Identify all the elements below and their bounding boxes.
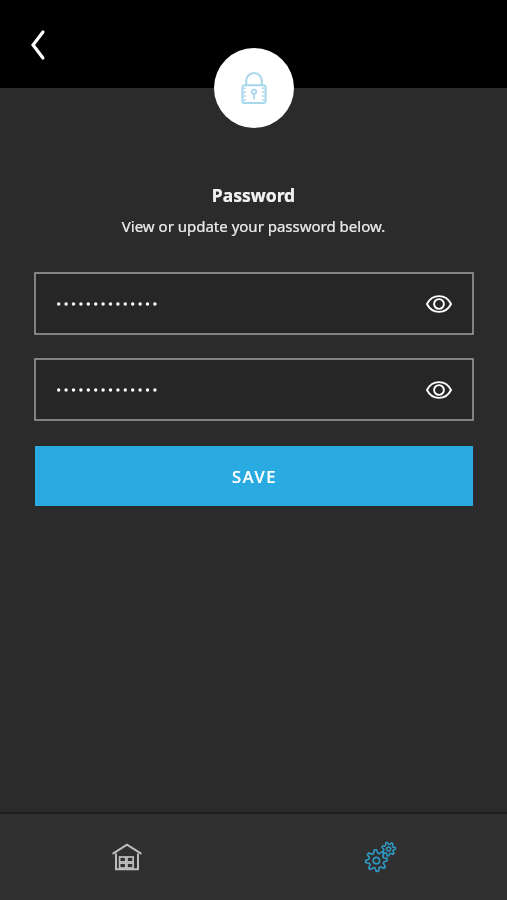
staticText: SAVE bbox=[232, 465, 277, 487]
button[interactable]: Home bbox=[0, 814, 253, 900]
button[interactable]: Show password bbox=[35, 273, 473, 334]
button[interactable]: Show password bbox=[417, 282, 461, 326]
staticText: Password bbox=[0, 183, 507, 207]
button[interactable]: Settings bbox=[253, 814, 507, 900]
button[interactable]: SAVE bbox=[35, 446, 473, 506]
button[interactable]: Back bbox=[14, 21, 62, 69]
button[interactable]: Show password bbox=[417, 368, 461, 412]
button[interactable]: Show password bbox=[35, 359, 473, 420]
staticText: View or update your password below. bbox=[0, 216, 507, 236]
